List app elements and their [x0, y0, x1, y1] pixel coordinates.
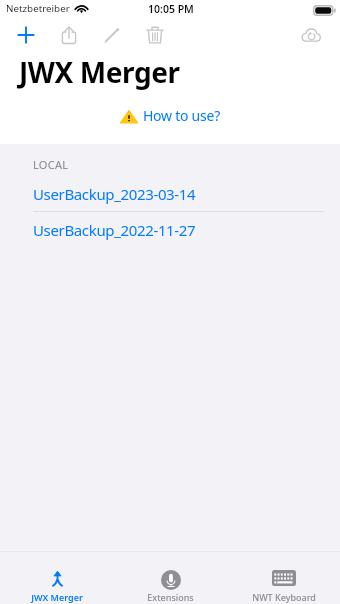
- staticText: LOCAL: [33, 157, 69, 172]
- staticText: Extensions: [147, 591, 194, 603]
- button[interactable]: Extensions: [114, 552, 227, 604]
- staticText: How to use?: [143, 106, 220, 125]
- button[interactable]: Add: [14, 23, 38, 47]
- button[interactable]: UserBackup_2023-03-14: [0, 176, 340, 212]
- staticText: UserBackup_2023-03-14: [33, 184, 196, 204]
- button[interactable]: How to use?: [120, 107, 220, 126]
- staticText: Netzbetreiber: [6, 2, 70, 15]
- button[interactable]: Share: [57, 23, 81, 47]
- button[interactable]: Edit: [100, 23, 124, 47]
- staticText: 10:05 PM: [148, 2, 194, 16]
- button[interactable]: NWT Keyboard: [227, 552, 340, 604]
- button[interactable]: Refresh from cloud: [299, 23, 323, 47]
- button[interactable]: UserBackup_2022-11-27: [0, 212, 340, 247]
- button[interactable]: Delete: [143, 23, 167, 47]
- button[interactable]: JWX Merger: [0, 552, 114, 604]
- staticText: JWX Merger: [19, 53, 180, 91]
- staticText: NWT Keyboard: [252, 591, 316, 603]
- staticText: JWX Merger: [31, 591, 83, 603]
- staticText: UserBackup_2022-11-27: [33, 220, 196, 240]
